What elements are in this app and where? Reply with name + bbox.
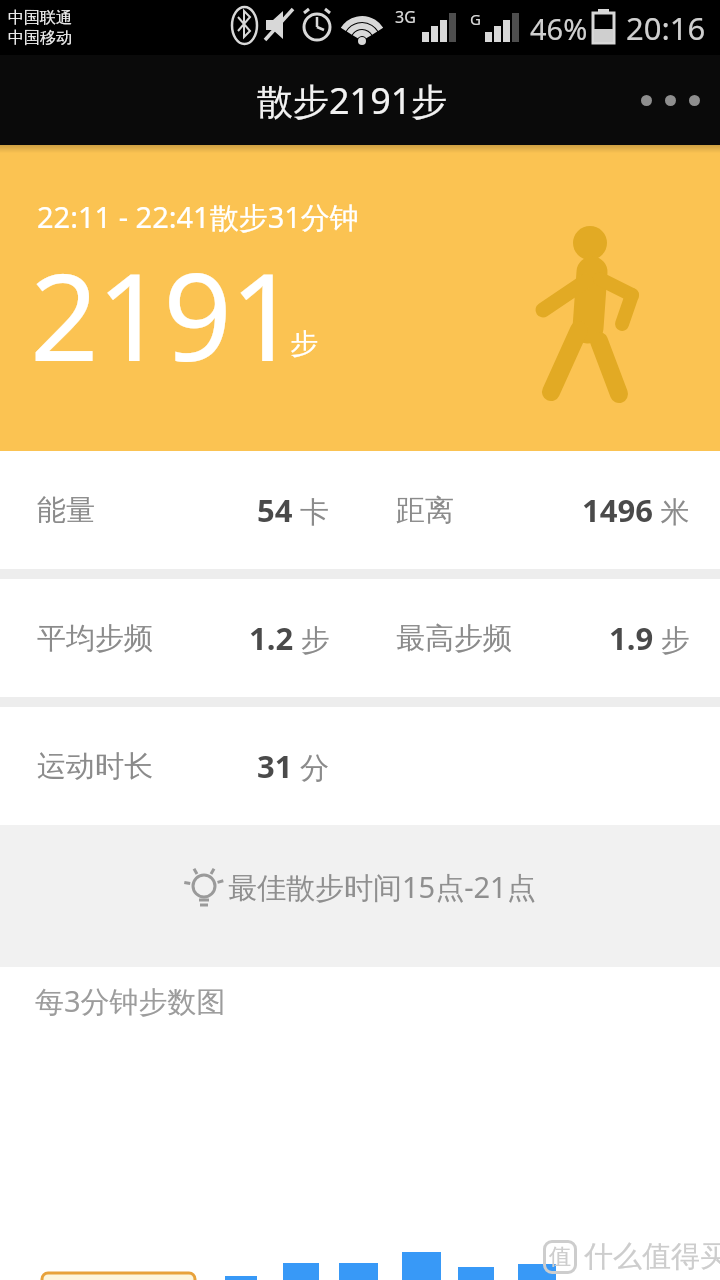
button[interactable] — [641, 95, 700, 106]
button[interactable]: 能量 — [0, 451, 720, 569]
staticText: 2191 — [30, 233, 297, 396]
staticText: 散步2191步 — [257, 76, 448, 125]
staticText: 距离 — [396, 492, 454, 529]
staticText: 最佳散步时间15点-21点 — [228, 867, 536, 907]
staticText: 能量 — [37, 492, 95, 529]
staticText: 20:16 — [626, 7, 706, 49]
button[interactable]: 平均步频 — [0, 579, 720, 697]
staticText: 31 分 — [257, 745, 330, 787]
button[interactable]: 最佳散步时间15点-21点 — [0, 825, 720, 967]
staticText: 每3分钟步数图 — [35, 981, 226, 1021]
staticText: 值 — [549, 1243, 571, 1271]
staticText: 54 卡 — [257, 489, 330, 531]
button[interactable]: 运动时长 — [0, 707, 720, 825]
staticText: 46% — [530, 9, 588, 48]
staticText: 1496 米 — [582, 489, 690, 531]
staticText: 22:11 - 22:41散步31分钟 — [37, 197, 359, 237]
staticText: 最高步频 — [396, 620, 512, 657]
staticText: 步 — [290, 326, 318, 361]
staticText: 1.2 步 — [249, 617, 330, 659]
staticText: 3G — [395, 6, 416, 28]
staticText: 中国移动 — [8, 28, 72, 48]
staticText: 1.9 步 — [609, 617, 690, 659]
staticText: 运动时长 — [37, 748, 153, 785]
staticText: G — [470, 9, 481, 29]
staticText: 什么值得买 — [584, 1238, 720, 1275]
button[interactable]: 22:11 - 22:41散步31分钟 — [0, 145, 720, 451]
staticText: 平均步频 — [37, 620, 153, 657]
staticText: 中国联通 — [8, 8, 72, 28]
